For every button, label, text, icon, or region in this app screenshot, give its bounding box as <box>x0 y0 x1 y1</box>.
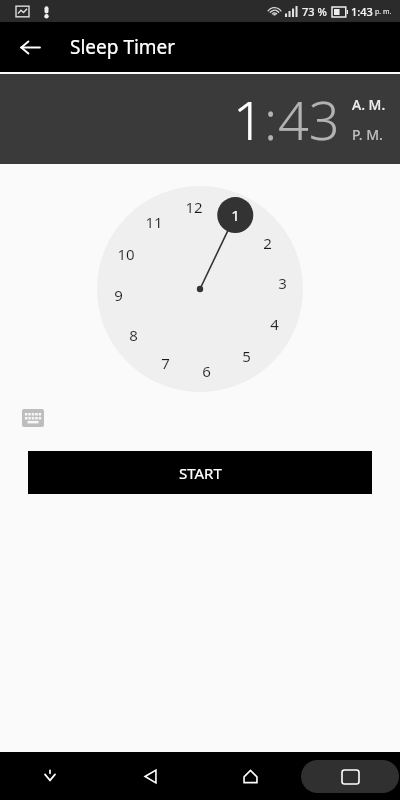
staticText: 1:43 <box>351 4 373 19</box>
staticText: 73 % <box>302 4 327 19</box>
button[interactable]: P. M. <box>352 125 383 144</box>
staticText: 7 <box>161 353 170 373</box>
staticText: 9 <box>114 285 123 305</box>
staticText: : <box>264 82 278 156</box>
staticText: Sleep Timer <box>70 34 176 60</box>
staticText: 12 <box>185 197 203 217</box>
staticText: p. m. <box>375 7 392 17</box>
staticText: P. M. <box>352 125 383 144</box>
button[interactable]: Hide keyboard <box>0 752 100 800</box>
button[interactable]: Back <box>12 29 48 65</box>
staticText: START <box>179 463 222 483</box>
staticText: A. M. <box>352 95 386 114</box>
button[interactable]: Switch to text input <box>22 409 44 427</box>
staticText: 8 <box>129 325 138 345</box>
staticText: 1 <box>231 205 240 225</box>
button[interactable]: START <box>28 451 372 494</box>
staticText: 10 <box>117 244 135 264</box>
button[interactable]: 43 <box>278 82 340 156</box>
staticText: 4 <box>270 314 279 334</box>
button[interactable]: A. M. <box>352 95 386 114</box>
staticText: 2 <box>263 233 272 253</box>
button[interactable]: Home <box>200 752 300 800</box>
staticText: 5 <box>242 346 251 366</box>
button[interactable]: Recent apps <box>301 760 399 793</box>
staticText: 3 <box>278 273 287 293</box>
button[interactable]: 1 <box>233 82 264 156</box>
staticText: 6 <box>202 361 211 381</box>
button[interactable]: Clock dial <box>97 186 303 392</box>
staticText: 11 <box>145 212 163 232</box>
button[interactable]: Back <box>100 752 200 800</box>
